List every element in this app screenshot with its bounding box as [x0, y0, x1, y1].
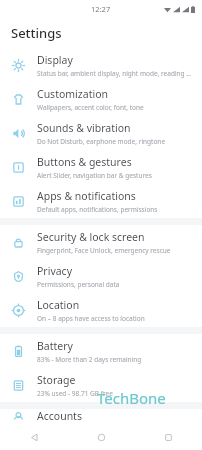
button[interactable]: Customization — [0, 82, 202, 116]
staticText: Sounds & vibration — [37, 121, 131, 135]
button[interactable]: Apps & notifications — [0, 184, 202, 218]
button[interactable]: Recent apps — [135, 425, 202, 450]
staticText: Settings — [11, 24, 62, 42]
button[interactable]: Storage — [0, 368, 202, 402]
staticText: On – 8 apps have access to location — [37, 314, 145, 323]
button[interactable]: Buttons & gestures — [0, 150, 202, 184]
button[interactable]: Accounts — [0, 409, 202, 425]
staticText: Do Not Disturb, earphone mode, ringtone — [37, 137, 166, 146]
staticText: Location — [37, 298, 80, 312]
button[interactable]: Back — [0, 425, 68, 450]
button[interactable]: Location — [0, 293, 202, 327]
staticText: Default apps, notifications, permissions — [37, 205, 158, 214]
staticText: Privacy — [37, 264, 73, 278]
staticText: Alert Slider, navigation bar & gestures — [37, 171, 152, 180]
staticText: TechBone — [97, 388, 166, 408]
staticText: Display — [37, 53, 73, 67]
button[interactable]: Privacy — [0, 259, 202, 293]
staticText: Buttons & gestures — [37, 155, 132, 169]
staticText: 83% - More than 2 days remaining — [37, 355, 142, 364]
button[interactable]: Security & lock screen — [0, 225, 202, 259]
button[interactable]: Display — [0, 48, 202, 82]
staticText: Status bar, ambient display, night mode,… — [37, 69, 192, 78]
staticText: Customization — [37, 87, 108, 101]
staticText: Storage — [37, 373, 76, 387]
staticText: Wallpapers, accent color, font, tone — [37, 103, 144, 112]
button[interactable]: Home — [68, 425, 135, 450]
staticText: Fingerprint, Face Unlock, emergency resc… — [37, 246, 171, 255]
staticText: 23% used - 98.71 GB free — [37, 389, 113, 398]
staticText: Accounts — [37, 409, 82, 423]
button[interactable]: Battery — [0, 334, 202, 368]
staticText: Battery — [37, 339, 73, 353]
button[interactable]: Sounds & vibration — [0, 116, 202, 150]
staticText: Apps & notifications — [37, 189, 136, 203]
staticText: 12:27 — [91, 4, 111, 14]
staticText: Permissions, personal data — [37, 280, 120, 289]
staticText: Security & lock screen — [37, 230, 145, 244]
